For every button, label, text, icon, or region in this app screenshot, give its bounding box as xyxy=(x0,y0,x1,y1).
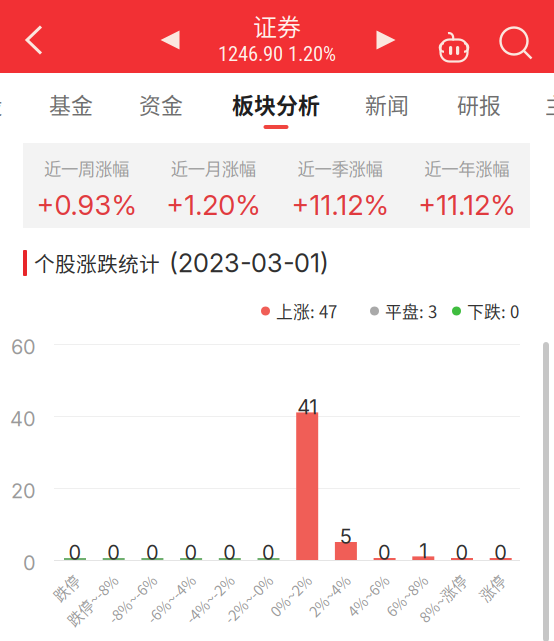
staticText: 主力 xyxy=(545,88,554,120)
staticText: 新闻 xyxy=(365,88,409,120)
staticText: -4%~-2% xyxy=(170,566,232,588)
staticText: +11.12% xyxy=(418,188,515,222)
staticText: 1246.90 1.20% xyxy=(218,42,336,66)
staticText: -2%~-0% xyxy=(208,566,270,588)
staticText: 0 xyxy=(494,540,507,565)
staticText: 跌停~-8% xyxy=(51,566,116,588)
staticText: 资金 xyxy=(139,88,183,120)
staticText: 0 xyxy=(185,540,198,565)
staticText: 跌停 xyxy=(47,566,77,588)
staticText: 证券 xyxy=(253,8,301,43)
staticText: 40 xyxy=(10,407,36,431)
staticText: 板块分析 xyxy=(232,88,320,120)
staticText: 近一月涨幅 xyxy=(171,155,256,181)
button[interactable]: 研报 xyxy=(0,73,60,135)
staticText: +11.12% xyxy=(291,188,388,222)
staticText: 20 xyxy=(11,479,36,503)
staticText: 0 xyxy=(223,540,236,565)
staticText: 5 xyxy=(340,524,352,549)
staticText: -6%~-4% xyxy=(131,566,193,588)
staticText: 1 xyxy=(419,539,427,563)
staticText: 0 xyxy=(455,540,468,565)
staticText: 6%~8% xyxy=(373,566,425,588)
staticText: 近一年涨幅 xyxy=(424,155,509,181)
staticText: 4%~6% xyxy=(335,566,387,588)
staticText: 下跌: 0 xyxy=(467,299,519,323)
button[interactable]: 下一个 xyxy=(0,0,40,40)
staticText: 0 xyxy=(378,540,391,565)
staticText: 平盘: 3 xyxy=(385,299,437,323)
staticText: 上涨: 47 xyxy=(276,299,337,323)
staticText: 0 xyxy=(107,540,120,565)
staticText: 0 xyxy=(262,540,275,565)
staticText: 涨停 xyxy=(473,566,503,588)
staticText: 0 xyxy=(68,540,81,565)
button[interactable]: 搜索 xyxy=(0,0,48,44)
staticText: 研报 xyxy=(457,88,501,120)
button[interactable]: 板块分析 xyxy=(0,73,130,135)
staticText: 基金 xyxy=(49,88,93,120)
staticText: A股 xyxy=(0,88,2,120)
button[interactable]: 资金 xyxy=(0,73,60,135)
staticText: (2023-03-01) xyxy=(169,248,329,278)
button[interactable]: 主力 xyxy=(0,73,60,135)
button[interactable]: 上一个 xyxy=(0,0,40,40)
staticText: 近一季涨幅 xyxy=(297,155,382,181)
staticText: 60 xyxy=(11,335,36,359)
staticText: +0.93% xyxy=(36,188,136,222)
staticText: 2%~4% xyxy=(296,566,348,588)
button[interactable]: 基金 xyxy=(0,73,60,135)
staticText: -8%~-6% xyxy=(92,566,154,588)
button[interactable]: 新闻 xyxy=(0,73,60,135)
staticText: 近一周涨幅 xyxy=(44,155,129,181)
staticText: 0%~2% xyxy=(257,566,309,588)
button[interactable]: 返回 xyxy=(0,0,44,56)
staticText: 0 xyxy=(146,540,159,565)
button[interactable]: 智能助手 xyxy=(0,0,52,44)
staticText: 8%~涨停 xyxy=(404,566,464,588)
staticText: 个股涨跌统计 xyxy=(34,248,160,278)
staticText: 0 xyxy=(23,551,36,575)
button[interactable]: A股 xyxy=(0,73,60,135)
staticText: +1.20% xyxy=(166,188,260,222)
staticText: 41 xyxy=(297,395,317,419)
